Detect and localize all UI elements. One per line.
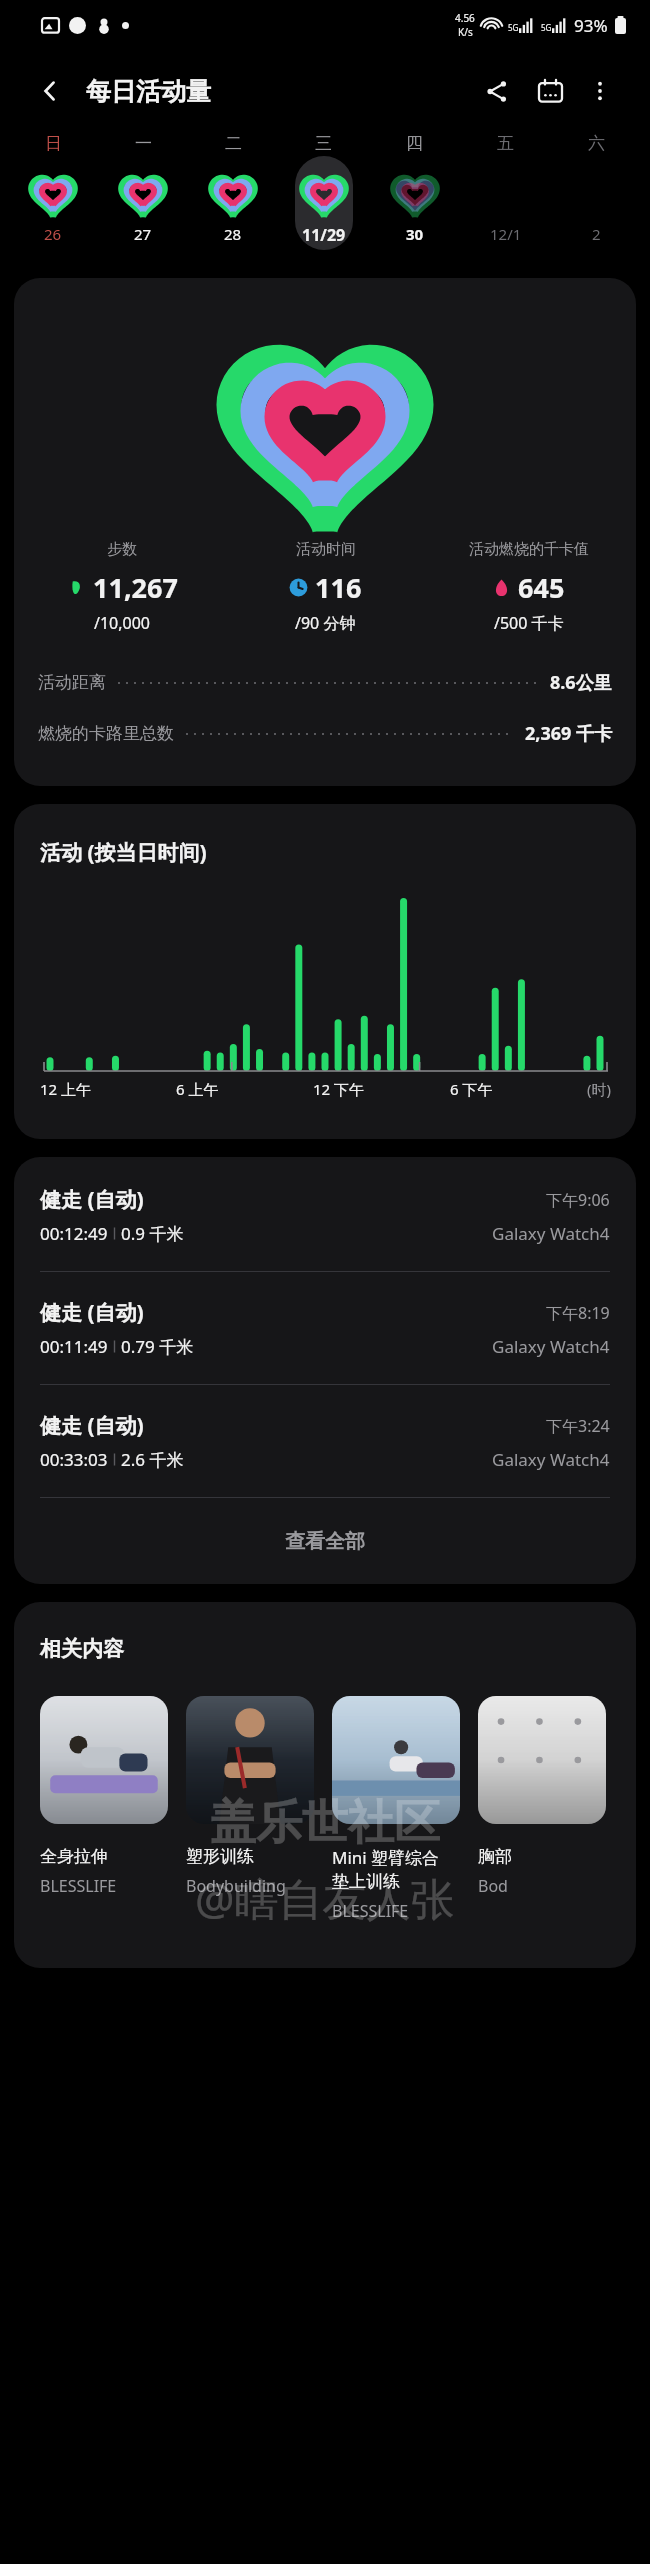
staticText: 28 — [224, 224, 242, 244]
staticText: 645 — [518, 569, 565, 606]
button[interactable]: 全身拉伸 — [40, 1696, 168, 1897]
staticText: 查看全部 — [285, 1529, 365, 1554]
staticText: Bodybuilding — [186, 1875, 286, 1897]
staticText: 00:12:49 — [40, 1222, 108, 1245]
button[interactable]: 健走 (自动) — [14, 1385, 636, 1497]
button[interactable]: 日 — [8, 132, 98, 262]
staticText: Galaxy Watch4 — [492, 1335, 610, 1358]
staticText: /500 千卡 — [494, 612, 564, 634]
staticText: 30 — [406, 224, 424, 244]
staticText: 一 — [135, 133, 152, 154]
staticText: 27 — [134, 224, 152, 244]
staticText: BLESSLIFE — [332, 1900, 409, 1922]
button[interactable]: 步数 — [20, 540, 224, 634]
button[interactable]: Share — [474, 69, 518, 113]
staticText: 日 — [45, 133, 62, 154]
staticText: 2 — [592, 224, 601, 244]
button[interactable]: 一 — [98, 132, 188, 262]
staticText: 8.6公里 — [550, 670, 612, 695]
staticText: 下午8:19 — [546, 1302, 610, 1324]
button[interactable]: 健走 (自动) — [14, 1272, 636, 1384]
staticText: 0.79 千米 — [121, 1335, 194, 1358]
staticText: 燃烧的卡路里总数 — [38, 723, 174, 744]
button[interactable]: 活动 (按当日时间) — [14, 804, 636, 1139]
staticText: 四 — [406, 133, 423, 154]
staticText: 活动时间 — [296, 540, 356, 559]
staticText: 六 — [588, 133, 605, 154]
button[interactable]: Back — [28, 69, 72, 113]
staticText: 三 — [315, 133, 332, 154]
button[interactable]: 二 — [188, 132, 278, 262]
staticText: 5G — [508, 22, 519, 33]
staticText: 活动 (按当日时间) — [40, 838, 207, 867]
staticText: 12/1 — [490, 224, 522, 244]
staticText: /10,000 — [94, 612, 151, 634]
staticText: 每日活动量 — [86, 76, 211, 107]
staticText: 胸部 — [478, 1846, 512, 1867]
staticText: 12 下午 — [313, 1079, 450, 1099]
staticText: 健走 (自动) — [40, 1185, 144, 1214]
staticText: @瞎自友人张 — [195, 1868, 455, 1928]
staticText: 00:33:03 — [40, 1448, 108, 1471]
staticText: 下午3:24 — [546, 1415, 610, 1437]
staticText: 2,369 千卡 — [525, 721, 612, 746]
button[interactable]: 六 — [551, 132, 642, 262]
staticText: 4.56 — [455, 11, 475, 25]
staticText: BLESSLIFE — [40, 1875, 117, 1897]
staticText: 健走 (自动) — [40, 1411, 144, 1440]
staticText: Galaxy Watch4 — [492, 1448, 610, 1471]
staticText: Galaxy Watch4 — [492, 1222, 610, 1245]
staticText: 塑形训练 — [186, 1846, 254, 1867]
button[interactable]: 活动燃烧的千卡值 — [427, 540, 630, 634]
button[interactable]: 五 — [460, 132, 551, 262]
staticText: /90 分钟 — [295, 612, 356, 634]
button[interactable]: 塑形训练 — [186, 1696, 314, 1897]
staticText: Mini 塑臂综合 垫上训练 — [332, 1846, 440, 1892]
button[interactable]: 健走 (自动) — [14, 1157, 636, 1271]
staticText: 2.6 千米 — [121, 1448, 184, 1471]
staticText: 00:11:49 — [40, 1335, 108, 1358]
staticText: 0.9 千米 — [121, 1222, 184, 1245]
staticText: 11,267 — [93, 569, 178, 606]
button[interactable]: 胸部 — [478, 1696, 606, 1897]
staticText: 盖乐世社区 — [210, 1794, 440, 1852]
button[interactable]: More options — [578, 69, 622, 113]
button[interactable]: 活动距离 — [38, 670, 612, 695]
staticText: 全身拉伸 — [40, 1846, 108, 1867]
staticText: 五 — [497, 133, 514, 154]
button[interactable]: Calendar — [528, 69, 572, 113]
staticText: K/s — [458, 25, 473, 39]
staticText: 6 下午 — [450, 1079, 587, 1099]
staticText: 6 上午 — [176, 1079, 313, 1099]
staticText: 健走 (自动) — [40, 1298, 144, 1327]
button[interactable]: 活动时间 — [224, 540, 427, 634]
staticText: Bod — [478, 1875, 508, 1897]
staticText: 二 — [225, 133, 242, 154]
staticText: 活动距离 — [38, 672, 106, 693]
staticText: 相关内容 — [40, 1636, 124, 1662]
button[interactable]: 燃烧的卡路里总数 — [38, 721, 612, 746]
staticText: 93% — [574, 14, 608, 37]
staticText: 5G — [541, 22, 552, 33]
staticText: 116 — [315, 569, 362, 606]
button[interactable]: 三 — [278, 132, 369, 262]
button[interactable]: 查看全部 — [14, 1498, 636, 1584]
staticText: (时) — [587, 1079, 612, 1099]
staticText: 活动燃烧的千卡值 — [469, 540, 589, 559]
button[interactable]: Mini 塑臂综合 垫上训练 — [332, 1696, 460, 1922]
staticText: 11/29 — [302, 224, 346, 246]
button[interactable]: 步数 — [14, 278, 636, 786]
staticText: 下午9:06 — [546, 1189, 610, 1211]
staticText: 12 上午 — [40, 1079, 176, 1099]
staticText: 步数 — [107, 540, 137, 559]
button[interactable]: 四 — [369, 132, 460, 262]
staticText: 26 — [44, 224, 62, 244]
